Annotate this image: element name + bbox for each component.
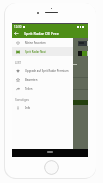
staticText: Meine Favoriten [25,41,46,45]
button[interactable]: Sprit Radar Navi [12,47,73,56]
staticText: Teilen [25,87,33,91]
staticText: Sprit Radar DE Free [24,31,59,36]
button[interactable]: Home [44,160,59,175]
staticText: LIST [15,61,22,65]
button[interactable]: Info [12,103,73,112]
staticText: Sprit Radar Navi [25,50,46,54]
button[interactable]: Bewerten [12,75,73,84]
button[interactable]: Back [12,29,21,38]
staticText: Info [25,106,31,110]
staticText: Bewerten [25,78,38,82]
staticText: 12:30 [14,25,22,29]
staticText: Upgrade auf Sprit Radar Premium [25,69,69,73]
button[interactable]: Meine Favoriten [12,38,73,47]
button[interactable]: Teilen [12,84,73,93]
button[interactable]: Upgrade auf Sprit Radar Premium [12,66,73,75]
staticText: Sonstiges [15,98,30,102]
